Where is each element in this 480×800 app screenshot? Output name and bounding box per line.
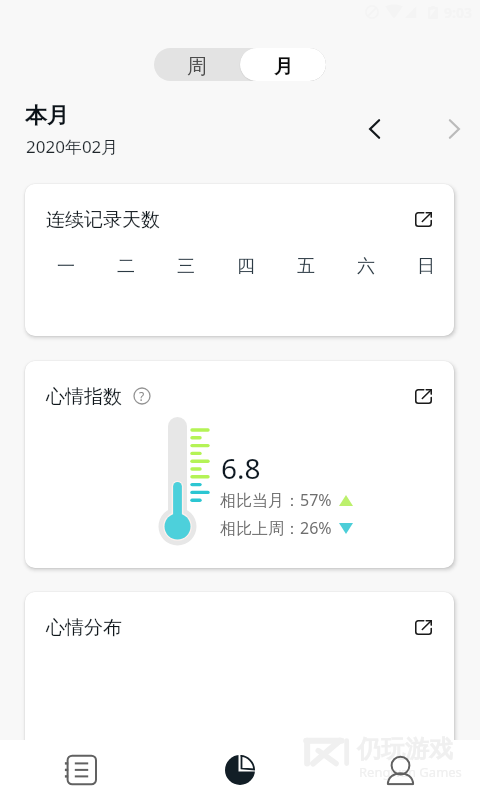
button[interactable]: 月 (240, 48, 326, 81)
staticText: 本月 (25, 102, 69, 130)
staticText: 月 (274, 55, 293, 79)
staticText: 四 (237, 255, 255, 278)
staticText: 相比上周：26% (220, 517, 332, 539)
button[interactable]: Next month (438, 113, 470, 145)
staticText: 六 (357, 255, 375, 278)
button[interactable]: Statistics (160, 740, 320, 800)
staticText: 相比当月：57% (220, 489, 332, 511)
button[interactable]: Open details (405, 201, 441, 237)
staticText: Rengwan Games (359, 763, 462, 781)
staticText: 连续记录天数 (46, 208, 160, 232)
button[interactable]: Previous month (358, 113, 390, 145)
staticText: 三 (177, 255, 195, 278)
staticText: 心情分布 (46, 616, 122, 640)
staticText: 一 (57, 255, 75, 278)
button[interactable]: Open details (405, 609, 441, 645)
staticText: 2020年02月 (26, 135, 119, 158)
staticText: 日 (417, 255, 435, 278)
staticText: ? (139, 388, 145, 404)
staticText: 仍玩游戏 (357, 734, 453, 764)
staticText: 二 (117, 255, 135, 278)
button[interactable]: 周 (154, 48, 240, 81)
staticText: 周 (187, 54, 207, 79)
button[interactable]: Profile (320, 740, 480, 800)
button[interactable]: Open details (405, 378, 441, 414)
staticText: 五 (297, 255, 315, 278)
button[interactable]: Journal (0, 740, 160, 800)
staticText: 心情指数 (46, 385, 122, 409)
staticText: 6.8 (221, 449, 261, 487)
